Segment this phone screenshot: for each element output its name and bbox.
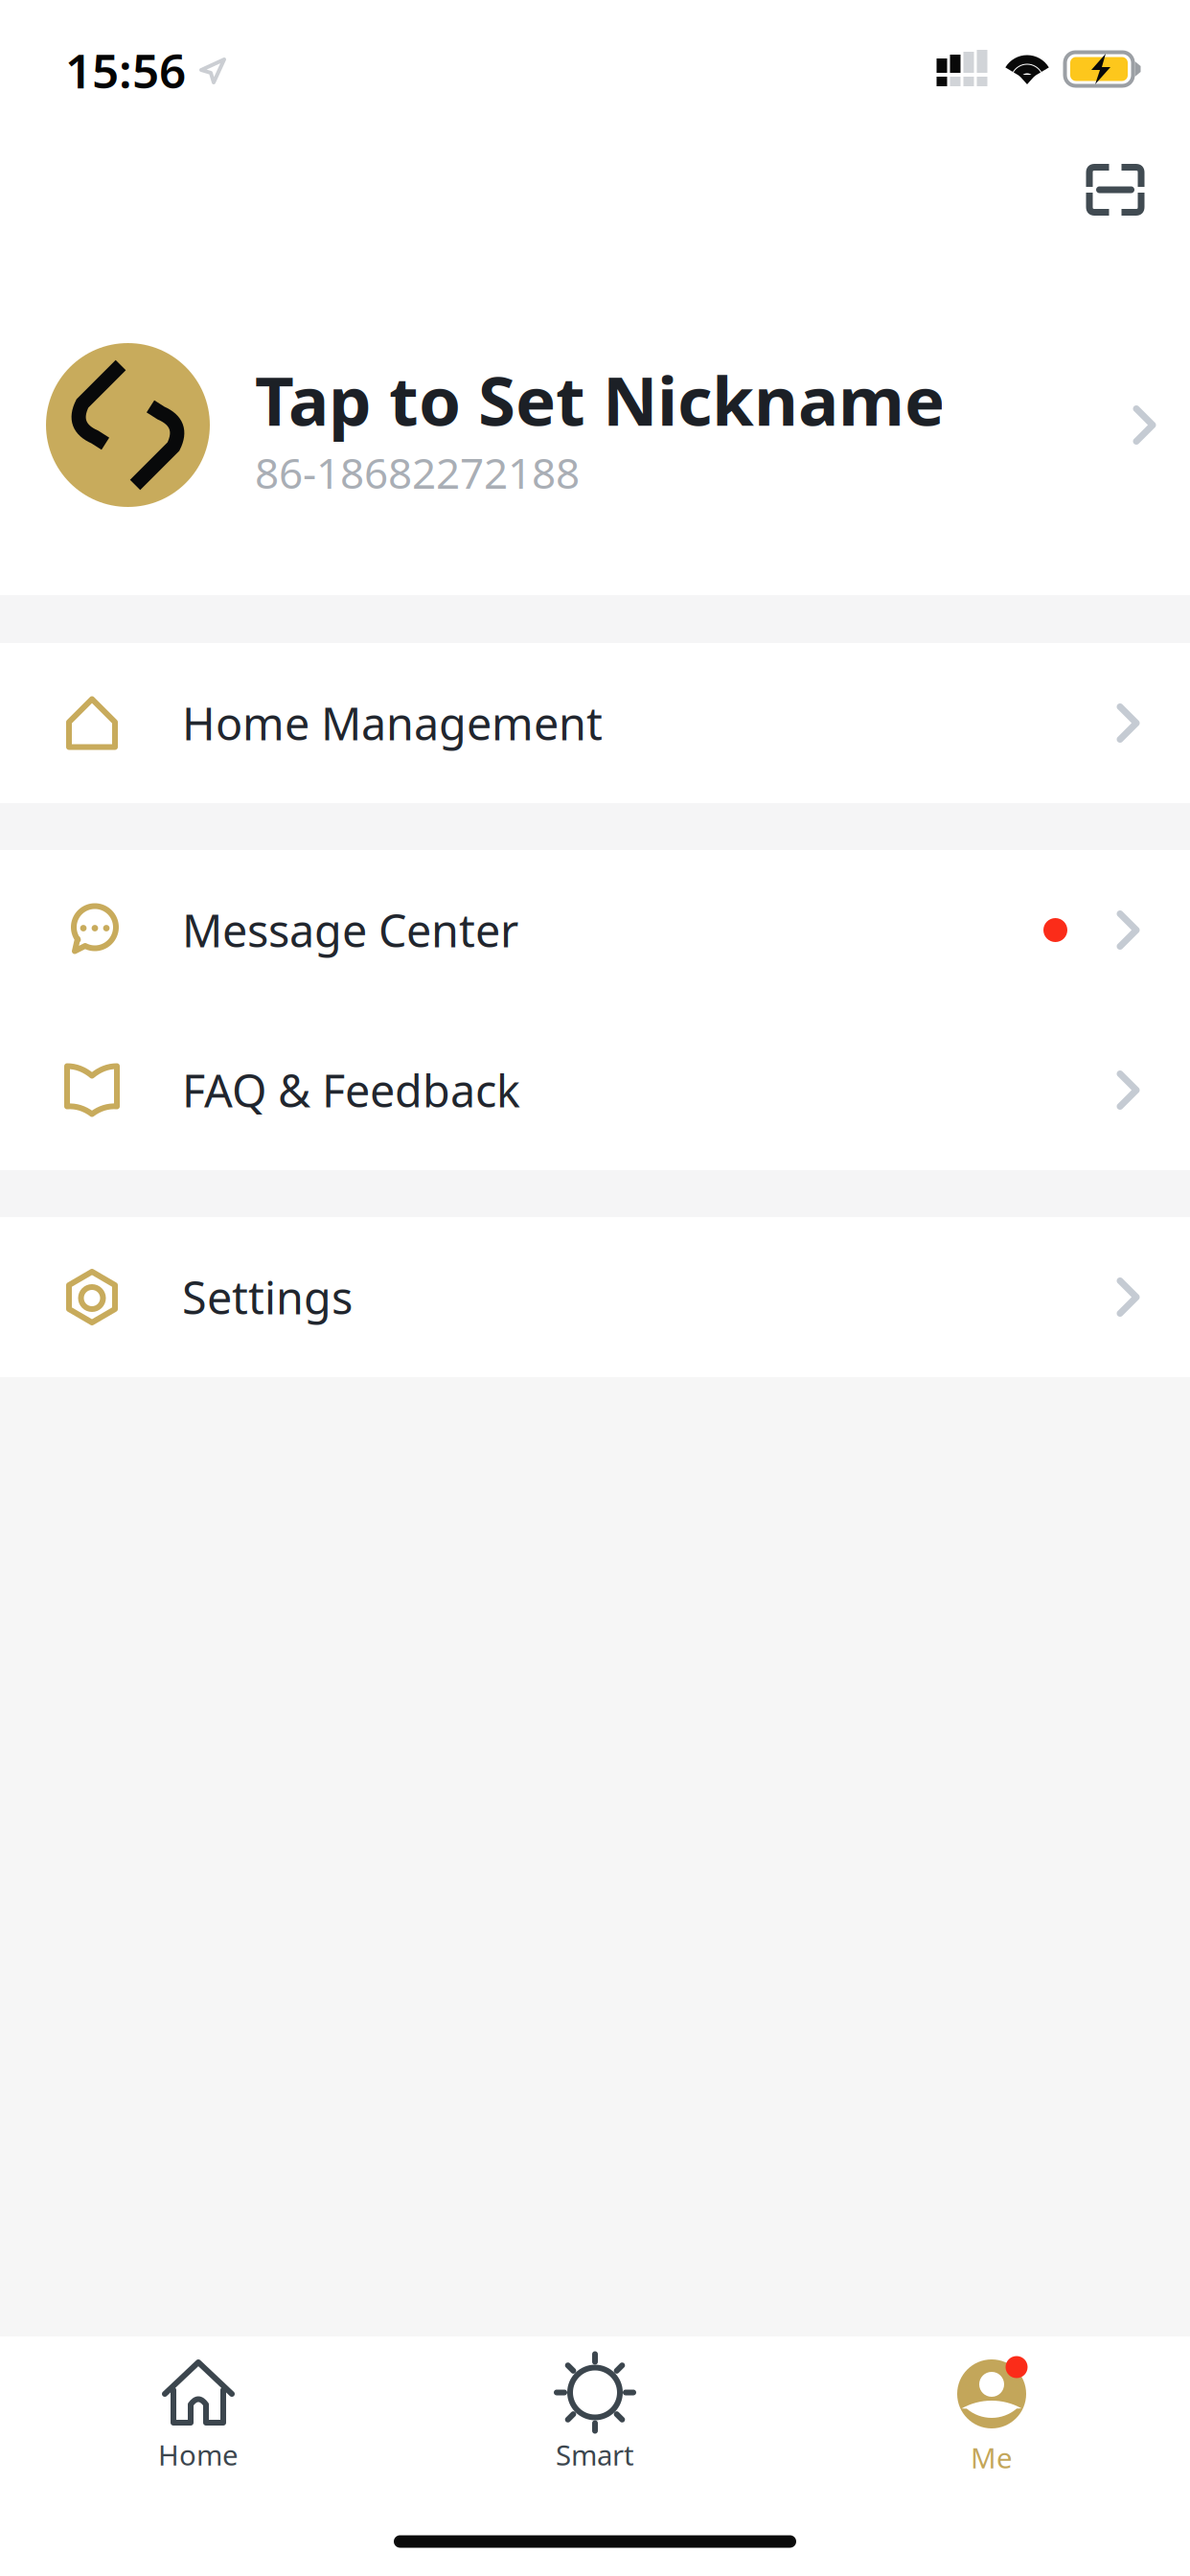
staticText: Smart xyxy=(556,2436,634,2473)
staticText: Home xyxy=(158,2436,239,2473)
staticText: Message Center xyxy=(182,900,518,960)
button[interactable]: Settings xyxy=(0,1217,1190,1377)
staticText: 86-18682272188 xyxy=(255,444,580,500)
staticText: FAQ & Feedback xyxy=(182,1060,520,1120)
button[interactable]: Home Management xyxy=(0,643,1190,803)
staticText: Me xyxy=(971,2439,1013,2476)
staticText: Tap to Set Nickname xyxy=(255,354,945,444)
staticText: Home Management xyxy=(182,693,603,753)
button[interactable]: Tap to Set Nickname xyxy=(0,343,1190,507)
button[interactable]: Home xyxy=(0,2336,397,2505)
button[interactable]: Me xyxy=(793,2336,1190,2505)
button[interactable]: Scan xyxy=(1064,139,1166,241)
staticText: 15:56 xyxy=(65,39,186,101)
button[interactable]: Smart xyxy=(397,2336,793,2505)
button[interactable]: FAQ & Feedback xyxy=(0,1010,1190,1170)
staticText: Settings xyxy=(182,1267,353,1327)
button[interactable]: Message Center xyxy=(0,850,1190,1010)
